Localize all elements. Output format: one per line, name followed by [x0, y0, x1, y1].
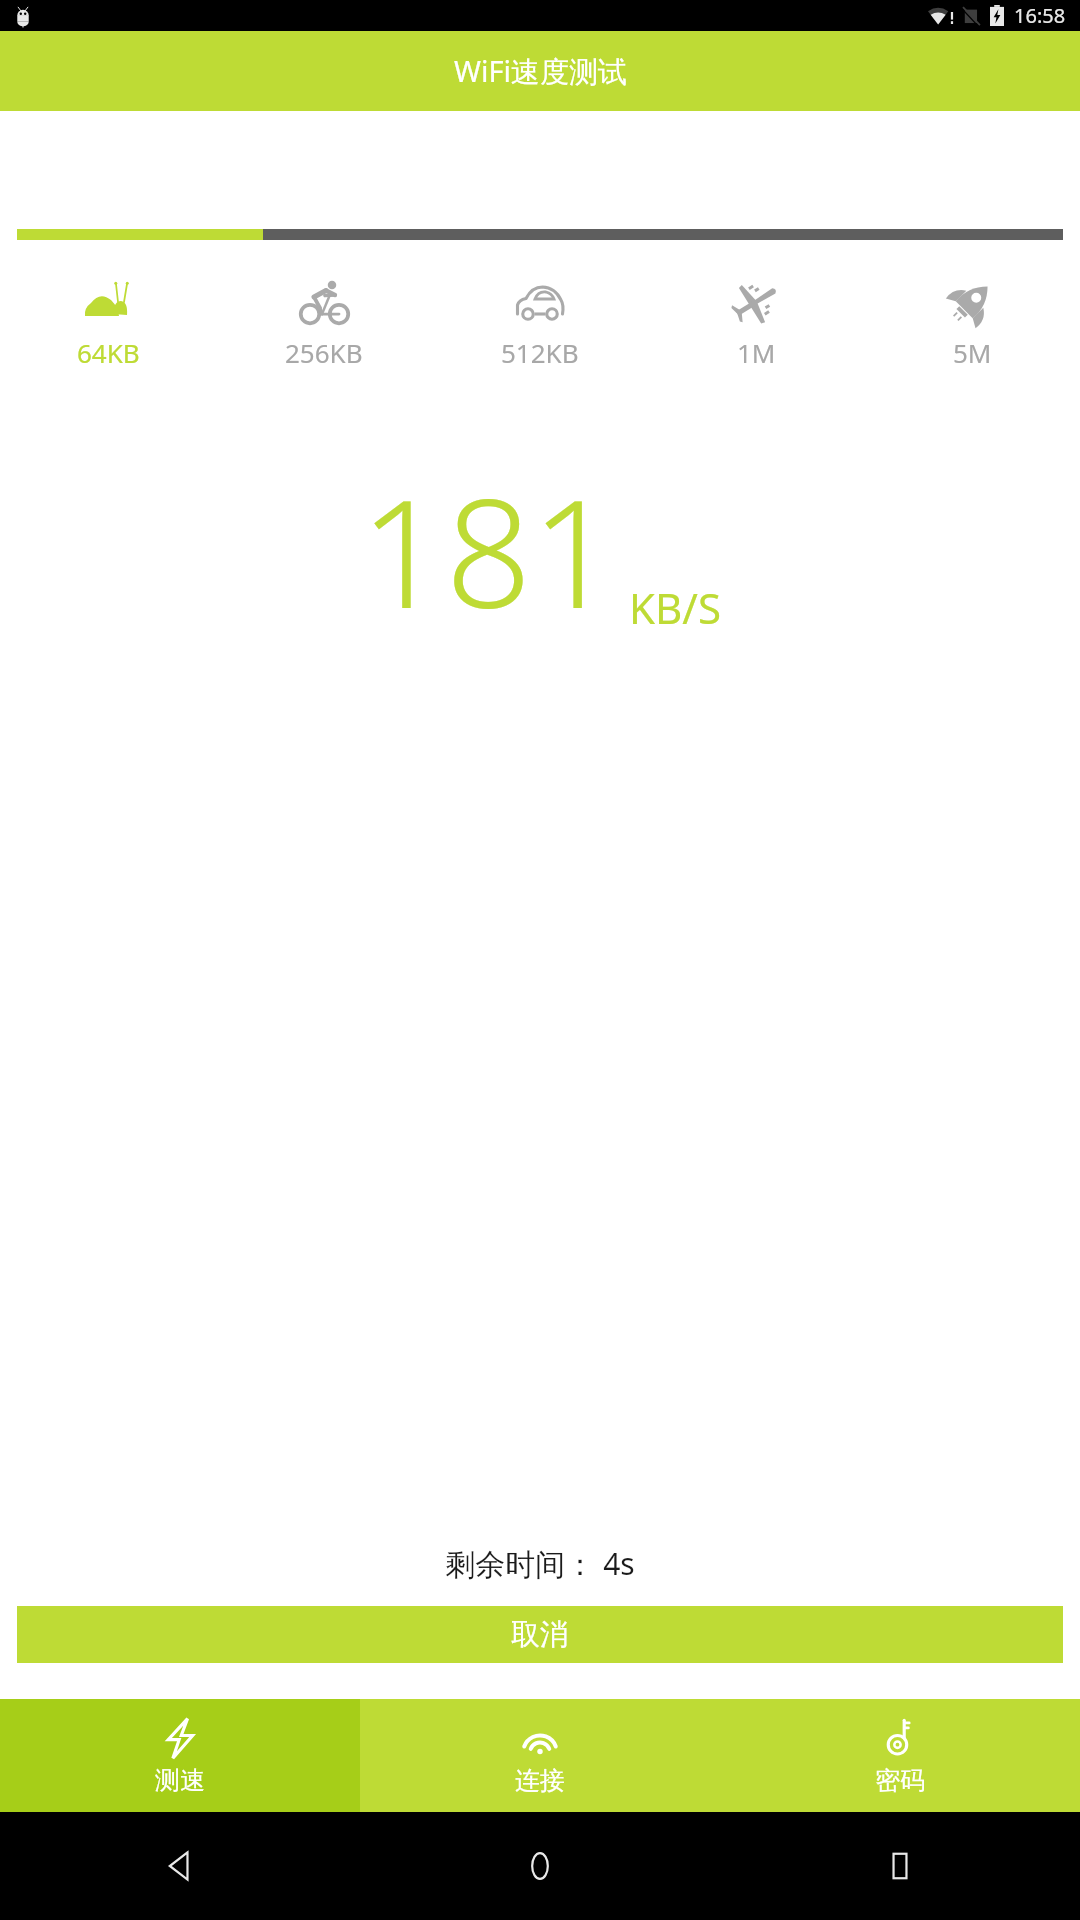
button[interactable]: 256KB	[216, 275, 432, 370]
button[interactable]: 1M	[648, 275, 864, 370]
staticText: 16:58	[1014, 2, 1066, 29]
other: Speed test	[159, 1717, 201, 1759]
button[interactable]: 512KB	[432, 275, 648, 370]
button[interactable]: Speed test	[0, 1699, 360, 1812]
staticText: 181	[360, 448, 617, 652]
button[interactable]: Home	[360, 1812, 720, 1920]
button[interactable]: 取消	[17, 1606, 1063, 1663]
staticText: 剩余时间： 4s	[0, 1543, 1080, 1584]
button[interactable]: Passwords	[720, 1699, 1080, 1812]
staticText: KB/S	[629, 579, 721, 636]
staticText: 64KB	[77, 335, 140, 370]
button[interactable]: Connect	[360, 1699, 720, 1812]
staticText: 连接	[515, 1765, 565, 1796]
staticText: 512KB	[501, 335, 579, 370]
other: Connect	[519, 1717, 561, 1759]
button[interactable]: 64KB	[0, 275, 216, 370]
staticText: 256KB	[285, 335, 363, 370]
staticText: 密码	[875, 1765, 925, 1796]
button[interactable]: 5M	[864, 275, 1080, 370]
button[interactable]: Back	[0, 1812, 360, 1920]
other: Passwords	[879, 1717, 921, 1759]
button[interactable]: Recents	[720, 1812, 1080, 1920]
staticText: 1M	[737, 335, 776, 370]
staticText: WiFi速度测试	[454, 51, 627, 91]
staticText: 取消	[511, 1616, 569, 1653]
staticText: 测速	[155, 1765, 205, 1796]
staticText: 5M	[953, 335, 992, 370]
